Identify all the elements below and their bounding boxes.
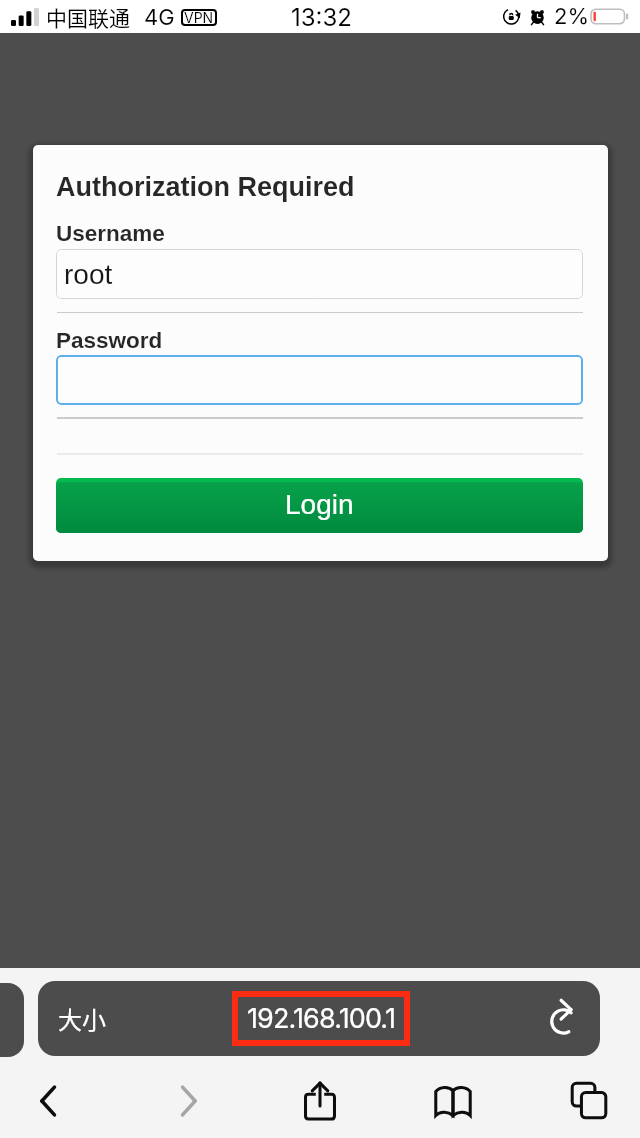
button[interactable]: Forward [157, 1070, 219, 1132]
button[interactable]: Reload [546, 1000, 583, 1037]
button[interactable]: Share [289, 1070, 351, 1132]
button[interactable]: 大小 [38, 981, 600, 1056]
button[interactable]: Bookmarks [422, 1070, 484, 1132]
button[interactable] [56, 355, 583, 405]
staticText: 2% [554, 3, 590, 30]
button[interactable]: Tabs [558, 1070, 620, 1132]
staticText: Login [285, 489, 354, 520]
staticText: Password [56, 328, 163, 353]
staticText: 大小 [58, 1001, 106, 1036]
staticText: Authorization Required [56, 172, 355, 202]
staticText: VPN [184, 9, 214, 26]
staticText: 13:32 [291, 3, 352, 32]
staticText: 192.168.100.1 [247, 1002, 395, 1035]
staticText: root [64, 259, 113, 290]
button[interactable]: Login [56, 478, 583, 533]
staticText: 4G [144, 4, 175, 31]
button[interactable]: root [56, 249, 583, 299]
staticText: 中国联通 [46, 2, 130, 32]
button[interactable]: Previous tab [0, 983, 24, 1057]
button[interactable]: Back [18, 1070, 80, 1132]
staticText: Username [56, 221, 165, 246]
